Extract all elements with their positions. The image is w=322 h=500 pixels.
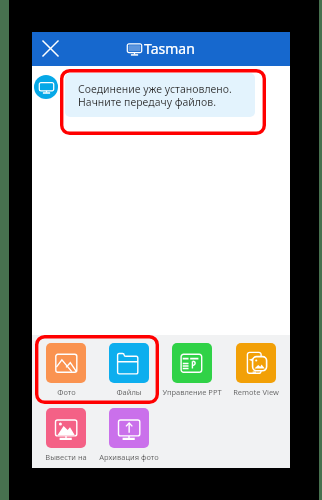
button[interactable]: Архивация фото — [97, 406, 160, 468]
button[interactable]: Вывести на — [34, 406, 97, 468]
staticText: Remote View — [233, 387, 279, 397]
staticText: Tasman — [144, 39, 195, 58]
staticText: Файлы — [116, 387, 142, 397]
button[interactable]: Управление PPT — [160, 341, 223, 403]
staticText: Вывести на — [45, 452, 87, 462]
button[interactable]: Remote View — [224, 341, 287, 403]
button[interactable]: Close — [35, 33, 65, 63]
staticText: Архивация фото — [99, 452, 159, 462]
staticText: Управление PPT — [162, 387, 222, 397]
button[interactable]: Фото — [34, 341, 97, 403]
button[interactable]: Файлы — [97, 341, 160, 403]
staticText: Фото — [57, 387, 76, 397]
staticText: Соединение уже установлено. Начните пере… — [78, 82, 232, 109]
